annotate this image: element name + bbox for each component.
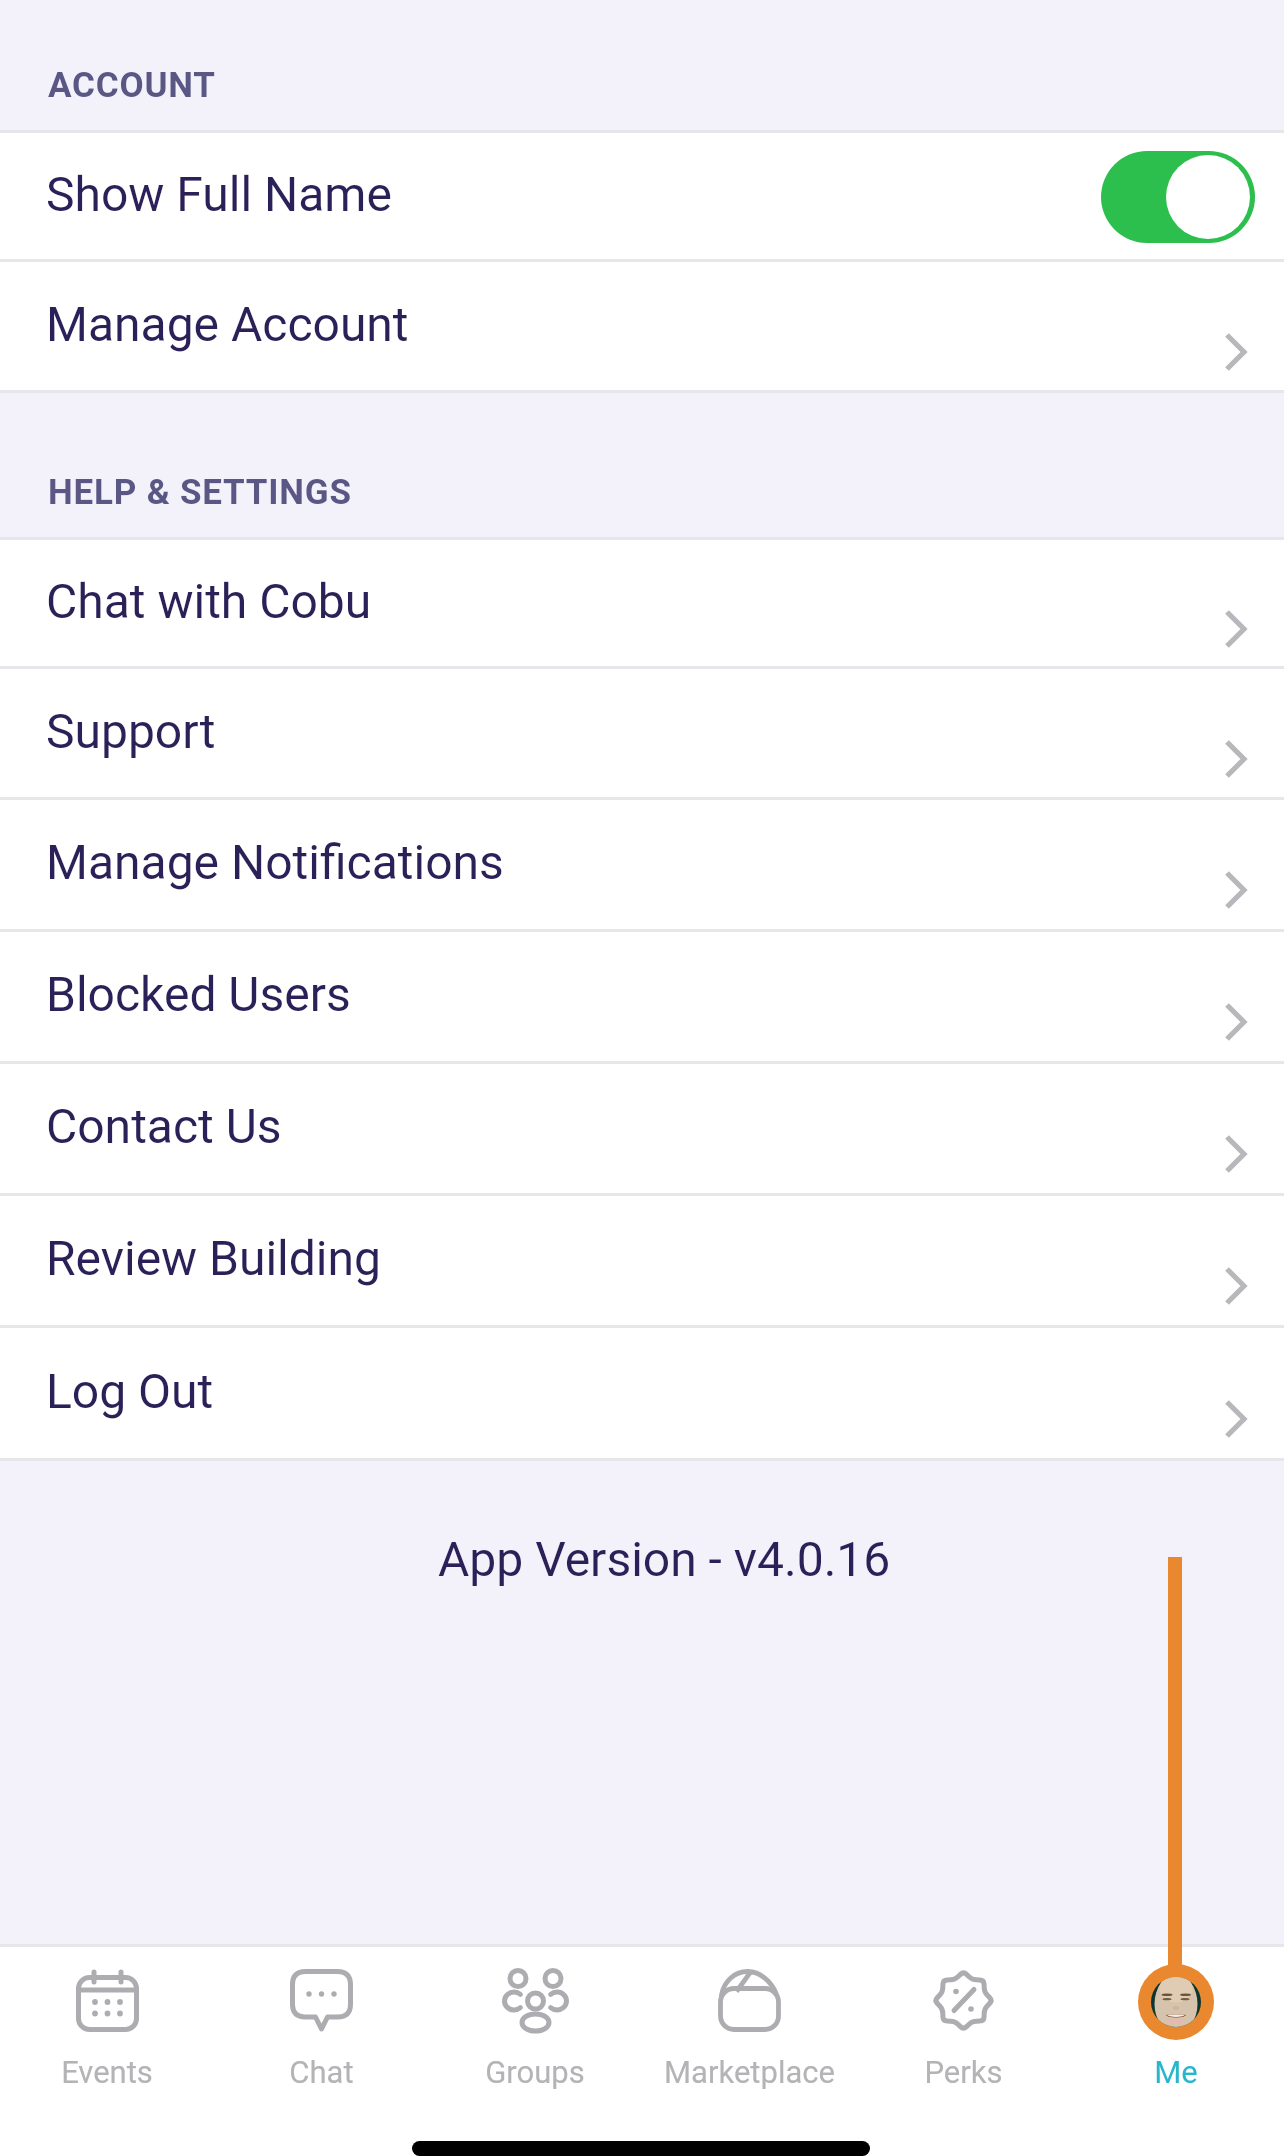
button[interactable]: Manage Notifications <box>0 800 1284 930</box>
button[interactable]: Contact Us <box>0 1064 1284 1194</box>
button[interactable]: Events tab <box>0 1947 214 2156</box>
staticText: Chat with Cobu <box>46 573 372 629</box>
button[interactable]: Support <box>0 669 1284 798</box>
other: Profile photo <box>1138 1964 1214 2040</box>
staticText: Marketplace <box>664 2054 835 2090</box>
staticText: App Version - v4.0.16 <box>438 1531 891 1587</box>
staticText: Manage Notifications <box>46 834 504 890</box>
button[interactable]: Log Out <box>0 1328 1284 1459</box>
button[interactable]: Show Full Name <box>0 133 1284 260</box>
staticText: Support <box>46 703 216 759</box>
staticText: Show Full Name <box>46 166 392 222</box>
button[interactable]: Perks tab <box>856 1947 1070 2156</box>
staticText: HELP & SETTINGS <box>48 472 352 513</box>
button[interactable]: Marketplace tab <box>642 1947 856 2156</box>
button[interactable]: Blocked Users <box>0 932 1284 1062</box>
button[interactable]: Chat tab <box>214 1947 428 2156</box>
button[interactable]: Review Building <box>0 1196 1284 1326</box>
staticText: Log Out <box>46 1363 214 1419</box>
staticText: Manage Account <box>46 296 409 352</box>
staticText: Blocked Users <box>46 966 351 1022</box>
staticText: Contact Us <box>46 1098 282 1154</box>
button[interactable]: Toggle Show Full Name <box>1101 151 1255 243</box>
staticText: Me <box>1154 2054 1198 2090</box>
staticText: Events <box>61 2054 153 2090</box>
staticText: ACCOUNT <box>48 65 216 106</box>
button[interactable]: Chat with Cobu <box>0 540 1284 667</box>
button[interactable]: Groups tab <box>428 1947 642 2156</box>
button[interactable]: Me tab <box>1069 1947 1283 2156</box>
staticText: Groups <box>485 2054 585 2090</box>
staticText: Chat <box>289 2054 354 2090</box>
staticText: Review Building <box>46 1230 381 1286</box>
button[interactable]: Manage Account <box>0 262 1284 391</box>
staticText: Perks <box>924 2054 1003 2090</box>
